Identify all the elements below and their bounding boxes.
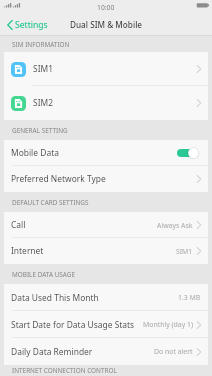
button[interactable]: SIM2 <box>4 86 208 120</box>
staticText: Preferred Network Type <box>11 173 106 185</box>
staticText: Always Ask <box>157 221 193 230</box>
staticText: 1.3 MB <box>178 293 201 302</box>
button[interactable]: Internet <box>4 238 208 264</box>
button[interactable]: Settings <box>6 19 48 31</box>
staticText: Call <box>11 219 26 231</box>
staticText: Daily Data Reminder <box>11 346 93 358</box>
staticText: SIM2 <box>33 97 53 109</box>
staticText: INTERNET CONNECTION CONTROL <box>12 366 117 375</box>
staticText: Start Date for Data Usage Stats <box>11 319 135 331</box>
staticText: DEFAULT CARD SETTINGS <box>12 198 89 207</box>
staticText: SIM1 <box>176 247 193 256</box>
button[interactable]: Mobile Data toggle <box>177 146 201 160</box>
button[interactable]: SIM1 <box>4 52 208 86</box>
staticText: Dual SIM & Mobile <box>70 19 143 30</box>
staticText: Internet <box>11 245 44 257</box>
button[interactable]: Start Date for Data Usage Stats <box>4 311 208 338</box>
staticText: GENERAL SETTING <box>12 126 68 135</box>
button[interactable]: Call <box>4 212 208 238</box>
button[interactable]: Data Used This Month <box>4 284 208 311</box>
staticText: SIM INFORMATION <box>12 40 70 49</box>
button[interactable]: Preferred Network Type <box>4 166 208 192</box>
staticText: Data Used This Month <box>11 292 99 304</box>
staticText: Monthly (day 1) <box>143 320 193 329</box>
staticText: Do not alert <box>154 347 193 356</box>
staticText: SIM1 <box>33 63 53 75</box>
staticText: MOBILE DATA USAGE <box>12 270 76 279</box>
button[interactable]: Mobile Data <box>4 140 208 166</box>
staticText: Settings <box>15 19 48 31</box>
staticText: Mobile Data <box>11 147 59 159</box>
staticText: 10:00 <box>97 3 115 12</box>
button[interactable]: Daily Data Reminder <box>4 338 208 365</box>
